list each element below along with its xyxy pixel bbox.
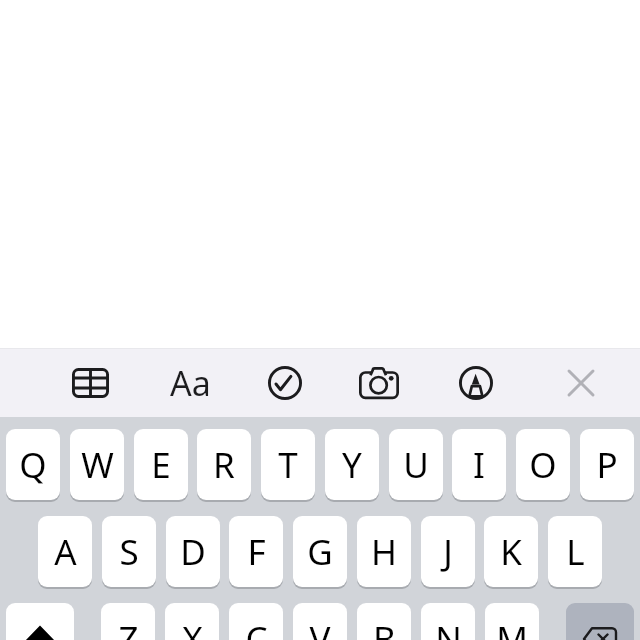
staticText: P bbox=[596, 441, 618, 489]
staticText: A bbox=[54, 528, 77, 576]
staticText: C bbox=[245, 615, 268, 640]
staticText: X bbox=[182, 615, 203, 640]
staticText: O bbox=[529, 441, 557, 489]
staticText: U bbox=[403, 441, 429, 489]
button[interactable]: K bbox=[484, 516, 538, 587]
button[interactable]: A bbox=[38, 516, 92, 587]
button[interactable] bbox=[58, 355, 122, 411]
staticText: M bbox=[496, 615, 528, 640]
staticText: N bbox=[435, 615, 462, 640]
button[interactable]: Z bbox=[101, 603, 155, 640]
button[interactable]: Q bbox=[6, 429, 60, 500]
button[interactable]: G bbox=[293, 516, 347, 587]
button[interactable]: H bbox=[357, 516, 411, 587]
button[interactable]: B bbox=[357, 603, 411, 640]
staticText: R bbox=[213, 441, 235, 489]
staticText: G bbox=[307, 528, 333, 576]
button[interactable] bbox=[6, 603, 74, 640]
button[interactable]: V bbox=[293, 603, 347, 640]
button[interactable] bbox=[566, 603, 634, 640]
button[interactable]: U bbox=[389, 429, 443, 500]
button[interactable] bbox=[347, 355, 411, 411]
button[interactable] bbox=[549, 355, 613, 411]
button[interactable]: S bbox=[102, 516, 156, 587]
button[interactable]: T bbox=[261, 429, 315, 500]
button[interactable] bbox=[253, 355, 317, 411]
staticText: E bbox=[151, 441, 171, 489]
button[interactable]: O bbox=[516, 429, 570, 500]
staticText: W bbox=[81, 441, 114, 489]
staticText: Aa bbox=[170, 360, 211, 406]
button[interactable]: M bbox=[485, 603, 539, 640]
staticText: Z bbox=[118, 615, 139, 640]
button[interactable]: P bbox=[580, 429, 634, 500]
button[interactable]: D bbox=[166, 516, 220, 587]
staticText: F bbox=[247, 528, 266, 576]
button[interactable]: F bbox=[229, 516, 283, 587]
button[interactable]: W bbox=[70, 429, 124, 500]
button[interactable]: Aa bbox=[158, 355, 222, 411]
staticText: B bbox=[373, 615, 396, 640]
staticText: V bbox=[309, 615, 331, 640]
staticText: D bbox=[180, 528, 206, 576]
staticText: K bbox=[500, 528, 522, 576]
staticText: Y bbox=[342, 441, 362, 489]
button[interactable]: X bbox=[165, 603, 219, 640]
button[interactable]: L bbox=[548, 516, 602, 587]
button[interactable]: R bbox=[197, 429, 251, 500]
button[interactable] bbox=[444, 355, 508, 411]
staticText: H bbox=[371, 528, 397, 576]
staticText: T bbox=[278, 441, 298, 489]
button[interactable]: J bbox=[421, 516, 475, 587]
staticText: I bbox=[473, 441, 485, 489]
button[interactable]: N bbox=[421, 603, 475, 640]
button[interactable]: C bbox=[229, 603, 283, 640]
staticText: S bbox=[119, 528, 139, 576]
staticText: Q bbox=[19, 441, 47, 489]
button[interactable]: Y bbox=[325, 429, 379, 500]
button[interactable]: E bbox=[134, 429, 188, 500]
staticText: J bbox=[443, 528, 453, 576]
button[interactable]: I bbox=[452, 429, 506, 500]
staticText: L bbox=[566, 528, 585, 576]
